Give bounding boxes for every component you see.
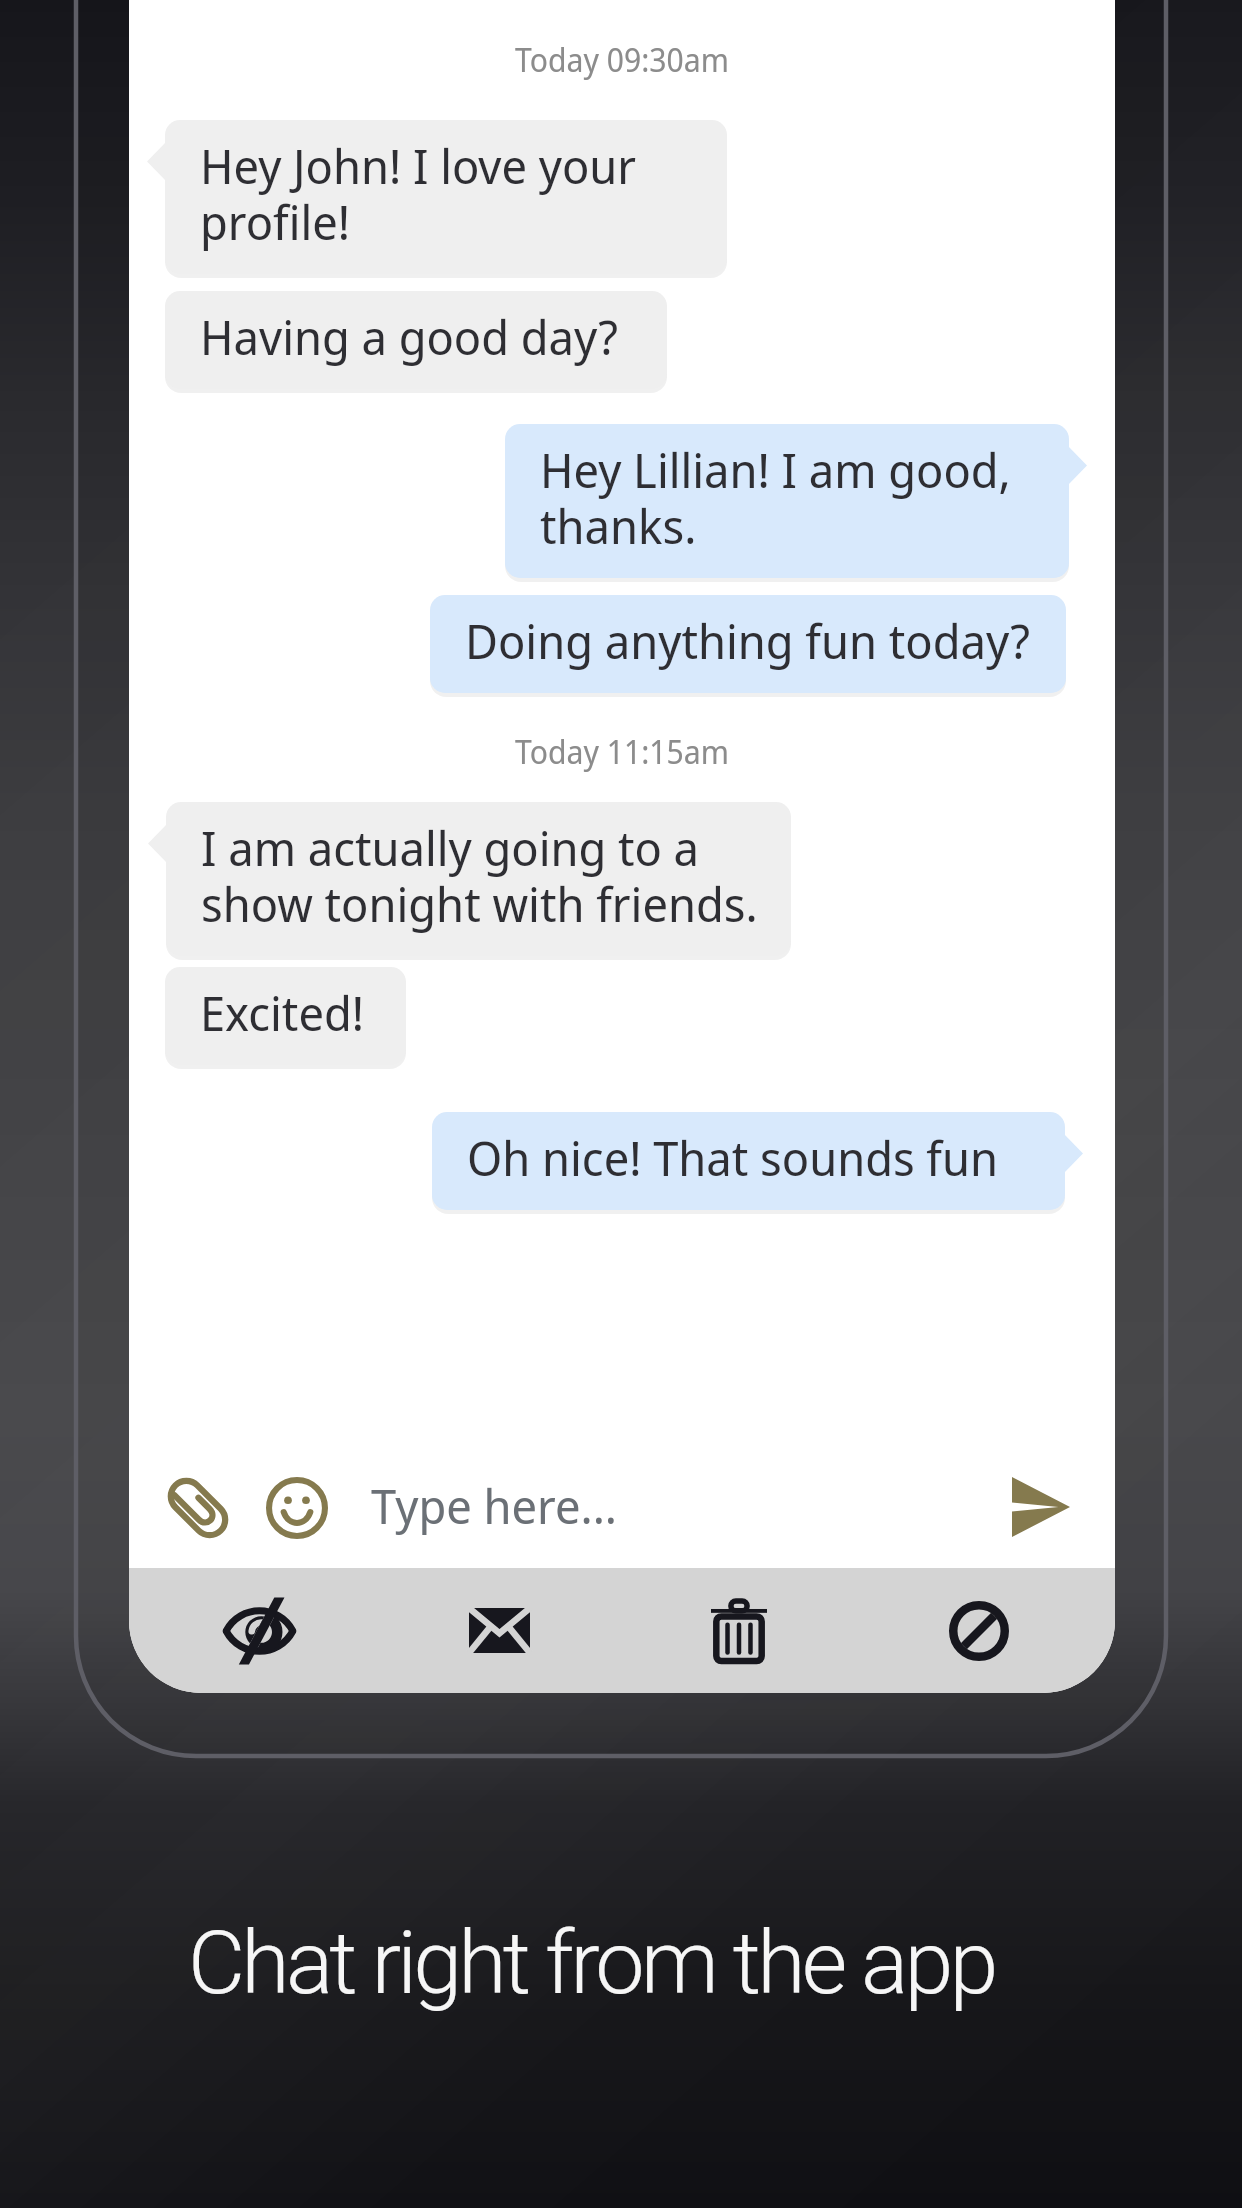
staticText: Chat right from the app [188,1911,995,2014]
button[interactable]: Doing anything fun today? [430,595,1066,693]
button[interactable]: Hey Lillian! I am good, thanks. [505,424,1069,578]
button[interactable]: Block [859,1568,1099,1693]
button[interactable]: Hide [139,1568,379,1693]
staticText: Hey Lillian! I am good, thanks. [540,437,1011,558]
staticText: Today 09:30am [129,38,1115,82]
button[interactable]: Attach file [165,1475,231,1541]
staticText: Excited! [200,980,364,1045]
staticText: Type here... [371,1473,618,1538]
staticText: Doing anything fun today? [465,608,1030,673]
button[interactable]: Messages [379,1568,619,1693]
staticText: I am actually going to a show tonight wi… [201,815,758,936]
button[interactable]: I am actually going to a show tonight wi… [166,802,791,956]
button[interactable]: Send [1012,1477,1070,1537]
staticText: Today 11:15am [129,730,1115,774]
staticText: Having a good day? [200,304,618,369]
button[interactable]: Chat right from the app [188,1911,995,2014]
button[interactable]: Having a good day? [165,291,667,389]
staticText: Oh nice! That sounds fun [467,1125,999,1190]
button[interactable]: Delete [619,1568,859,1693]
button[interactable]: Emoji [266,1477,328,1539]
button[interactable]: Excited! [165,967,406,1065]
button[interactable]: Oh nice! That sounds fun [432,1112,1065,1210]
button[interactable]: Hey John! I love your profile! [165,120,727,274]
staticText: Hey John! I love your profile! [200,133,637,254]
